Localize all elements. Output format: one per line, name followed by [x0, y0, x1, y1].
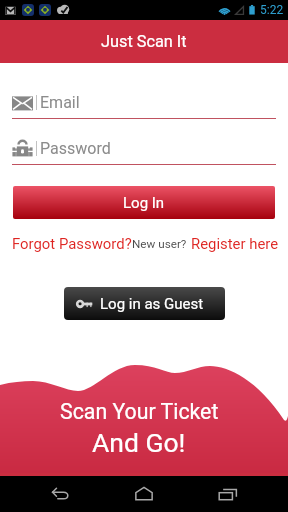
staticText: And Go!	[92, 427, 186, 458]
staticText: Just Scan It	[101, 32, 187, 51]
button[interactable]: Back	[36, 476, 84, 512]
staticText: Log in as Guest	[100, 295, 204, 313]
button[interactable]: Log in as Guest	[64, 287, 225, 320]
staticText: New user?	[132, 237, 187, 251]
staticText: Password	[40, 139, 111, 158]
staticText: Email	[40, 93, 80, 112]
button[interactable]: Recent apps	[204, 476, 252, 512]
staticText: Scan Your Ticket	[60, 399, 219, 424]
button[interactable]: Register here	[191, 235, 278, 252]
staticText: 5:22	[260, 3, 284, 17]
button[interactable]: Home	[120, 476, 168, 512]
staticText: Log In	[123, 194, 165, 212]
button[interactable]: Forgot Password?	[12, 235, 132, 252]
button[interactable]: Log In	[13, 186, 275, 219]
